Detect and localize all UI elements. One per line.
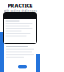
staticText: PRACTICE — [7, 2, 32, 9]
staticText: with coding challenges — [3, 9, 36, 13]
button[interactable] — [18, 65, 27, 68]
